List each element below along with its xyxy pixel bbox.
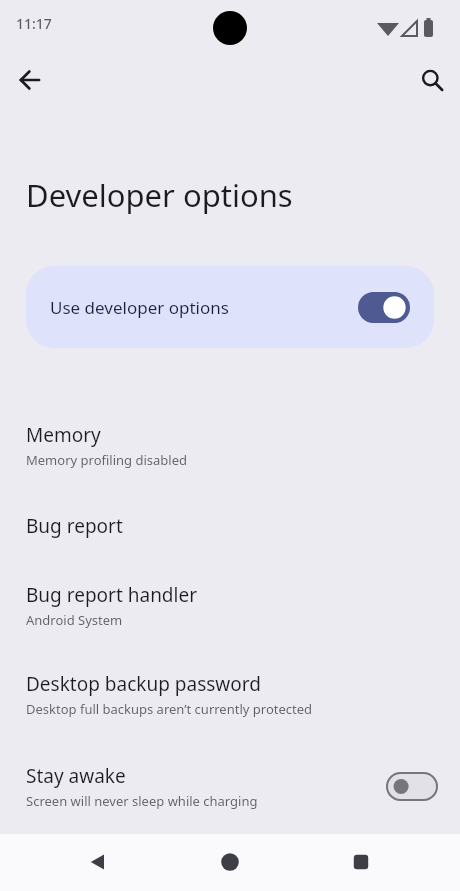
staticText: Stay awake — [26, 763, 126, 789]
button[interactable]: Recent apps — [337, 838, 385, 886]
button[interactable]: Stay awake — [0, 759, 460, 820]
staticText: Enable Bluetooth stack log — [26, 845, 264, 871]
button[interactable]: Bug report handler — [0, 578, 460, 639]
staticText: Bug report — [26, 513, 123, 539]
staticText: Memory — [26, 422, 101, 448]
button[interactable]: Back — [74, 838, 122, 886]
button[interactable]: Use developer options — [26, 266, 434, 348]
staticText: 11:17 — [16, 14, 52, 33]
button[interactable]: Bug report — [0, 509, 460, 549]
button[interactable]: Search — [408, 56, 456, 104]
button[interactable]: Back — [6, 56, 54, 104]
staticText: Desktop full backups aren’t currently pr… — [26, 700, 313, 718]
button[interactable]: Home — [206, 838, 254, 886]
staticText: Desktop backup password — [26, 671, 261, 697]
staticText: Developer options — [26, 174, 293, 216]
staticText: Bug report handler — [26, 582, 198, 608]
staticText: Use developer options — [50, 296, 229, 319]
staticText: Android System — [26, 611, 123, 629]
button[interactable]: Memory — [0, 418, 460, 479]
button[interactable]: Desktop backup password — [0, 667, 460, 728]
staticText: Memory profiling disabled — [26, 451, 187, 469]
staticText: Screen will never sleep while charging — [26, 792, 258, 810]
